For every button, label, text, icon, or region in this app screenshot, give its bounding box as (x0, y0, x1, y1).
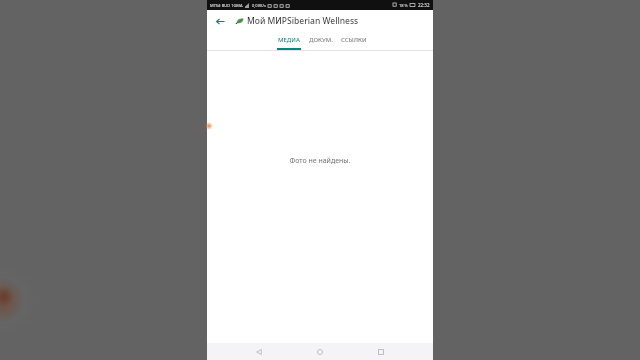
button[interactable]: МЕДИА (277, 32, 301, 50)
button[interactable]: ДОКУМ. (309, 32, 333, 50)
staticText: ДОКУМ. (309, 36, 333, 44)
staticText: MTS# BUD 1GMA (210, 3, 243, 8)
button[interactable]: Back (250, 343, 268, 360)
button[interactable]: Home (311, 343, 329, 360)
staticText: Фото не найдены. (289, 156, 351, 166)
button[interactable]: ССЫЛКИ (341, 32, 367, 50)
staticText: 18 % (399, 3, 408, 8)
staticText: Мой МИРSiberian Wellness (247, 15, 359, 27)
staticText: ССЫЛКИ (341, 36, 367, 44)
staticText: 0,00K/s (252, 3, 266, 8)
button[interactable]: Back (212, 13, 228, 29)
button[interactable]: Recent apps (372, 343, 390, 360)
staticText: 22:32 (418, 2, 430, 8)
staticText: МЕДИА (278, 36, 300, 44)
